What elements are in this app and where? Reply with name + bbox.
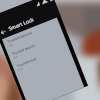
button[interactable]: Navigate up <box>0 23 11 40</box>
staticText: Off <box>8 42 14 48</box>
staticText: Off <box>18 67 24 72</box>
button[interactable]: Trusted devices <box>2 17 62 51</box>
staticText: Trusted face <box>16 56 37 68</box>
staticText: Trusted devices <box>6 30 33 44</box>
staticText: Off <box>13 54 19 60</box>
staticText: Smart Lock <box>8 16 35 33</box>
staticText: Trusted places <box>11 42 36 56</box>
button[interactable]: Trusted face <box>11 42 71 75</box>
button[interactable]: Trusted places <box>7 30 66 63</box>
